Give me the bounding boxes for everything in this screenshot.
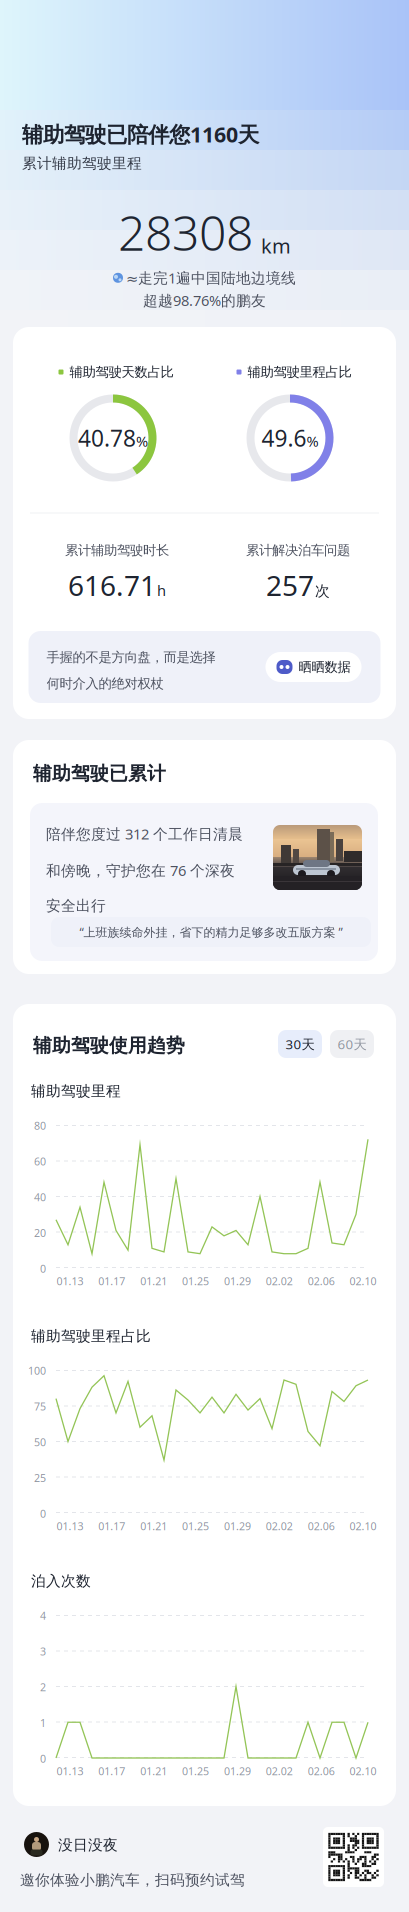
staticText: 100 [28, 1363, 46, 1378]
staticText: 辅助驾驶天数占比 [69, 364, 173, 380]
staticText: 0 [40, 1751, 46, 1766]
staticText: 01.13 [56, 1274, 83, 1288]
staticText: 超越98.76%的鹏友 [143, 290, 266, 310]
staticText: 80 [34, 1118, 46, 1133]
staticText: 辅助驾驶已累计 [33, 762, 166, 785]
staticText: 0 [40, 1261, 46, 1276]
staticText: 安全出行 [46, 897, 106, 915]
button[interactable]: 晒晒数据 [265, 652, 361, 682]
staticText: 40.78 [78, 423, 136, 453]
staticText: 257 [266, 567, 314, 604]
staticText: 晒晒数据 [298, 659, 350, 675]
button[interactable]: 60天 [330, 1030, 374, 1058]
button[interactable]: 30天 [278, 1030, 322, 1058]
staticText: 0 [40, 1506, 46, 1521]
staticText: % [306, 431, 318, 451]
staticText: 1 [40, 1716, 46, 1730]
staticText: 02.06 [308, 1764, 335, 1778]
staticText: 手握的不是方向盘，而是选择 [46, 649, 215, 665]
staticText: 40 [34, 1190, 46, 1204]
staticText: 02.10 [349, 1274, 376, 1288]
staticText: 25 [34, 1471, 46, 1485]
staticText: 没日没夜 [58, 1836, 118, 1854]
staticText: km [261, 232, 291, 259]
staticText: 累计辅助驾驶时长 [65, 542, 169, 559]
staticText: 01.25 [182, 1764, 209, 1778]
staticText: 01.25 [182, 1519, 209, 1533]
staticText: 辅助驾驶里程 [31, 1082, 121, 1100]
staticText: 60天 [337, 1035, 366, 1053]
staticText: 02.06 [308, 1274, 335, 1288]
staticText: 01.25 [182, 1274, 209, 1288]
staticText: 01.13 [56, 1519, 83, 1533]
staticText: 02.10 [349, 1764, 376, 1778]
staticText: 次 [315, 582, 330, 600]
staticText: 02.02 [266, 1519, 293, 1533]
staticText: ≈走完1遍中国陆地边境线 [126, 268, 296, 288]
staticText: 辅助驾驶已陪伴您1160天 [22, 120, 259, 148]
staticText: 辅助驾驶里程占比 [247, 364, 351, 380]
staticText: 49.6 [261, 423, 306, 453]
staticText: 4 [40, 1608, 46, 1623]
staticText: 20 [34, 1226, 46, 1240]
staticText: % [136, 431, 148, 451]
staticText: 01.29 [224, 1764, 251, 1778]
staticText: 50 [34, 1435, 46, 1449]
staticText: 01.17 [98, 1764, 125, 1778]
staticText: 泊入次数 [31, 1572, 91, 1590]
staticText: 3 [40, 1644, 46, 1658]
staticText: 60 [34, 1154, 46, 1168]
staticText: 02.02 [266, 1764, 293, 1778]
staticText: 01.21 [140, 1274, 167, 1288]
staticText: “上班族续命外挂，省下的精力足够多改五版方案 ” [79, 924, 342, 940]
staticText: 01.17 [98, 1274, 125, 1288]
staticText: 01.13 [56, 1764, 83, 1778]
staticText: 陪伴您度过 312 个工作日清晨 [46, 824, 243, 843]
staticText: 累计辅助驾驶里程 [22, 154, 142, 172]
staticText: 和傍晚，守护您在 76 个深夜 [46, 860, 235, 880]
staticText: 01.21 [140, 1764, 167, 1778]
staticText: h [157, 581, 166, 600]
staticText: 02.06 [308, 1519, 335, 1533]
staticText: 01.21 [140, 1519, 167, 1533]
staticText: 75 [34, 1399, 46, 1413]
staticText: 辅助驾驶使用趋势 [33, 1034, 185, 1057]
staticText: 01.17 [98, 1519, 125, 1533]
staticText: 28308 [118, 200, 253, 264]
staticText: 01.29 [224, 1519, 251, 1533]
staticText: 辅助驾驶里程占比 [31, 1327, 151, 1345]
staticText: 30天 [285, 1035, 314, 1053]
staticText: 02.02 [266, 1274, 293, 1288]
staticText: 邀你体验小鹏汽车，扫码预约试驾 [20, 1871, 245, 1889]
staticText: 01.29 [224, 1274, 251, 1288]
staticText: 何时介入的绝对权杖 [46, 675, 163, 692]
staticText: 累计解决泊车问题 [246, 542, 350, 559]
staticText: 2 [40, 1680, 46, 1694]
staticText: 616.71 [68, 567, 156, 604]
staticText: 02.10 [349, 1519, 376, 1533]
